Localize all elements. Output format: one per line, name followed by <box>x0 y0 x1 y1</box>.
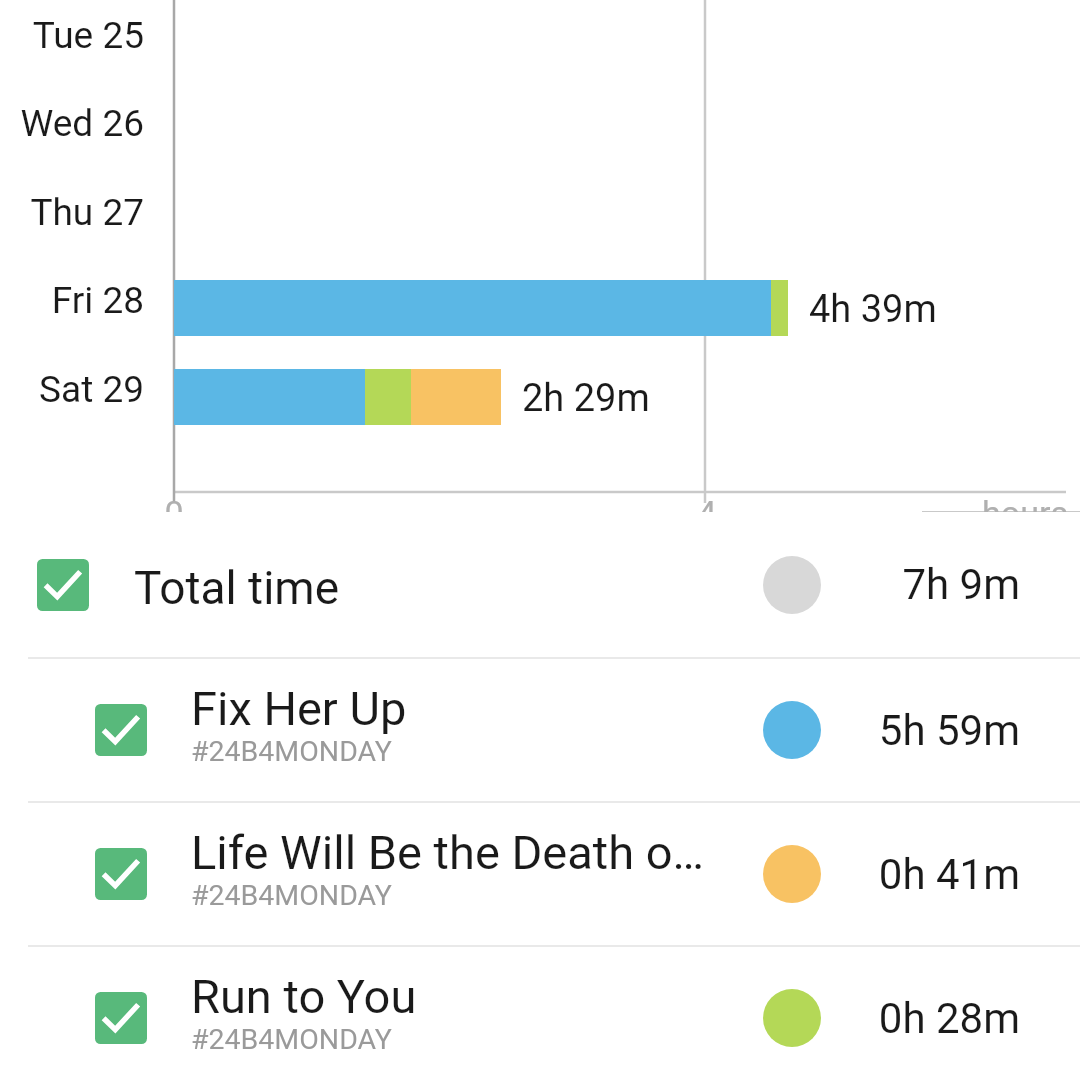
staticText: 4 <box>587 493 827 512</box>
button[interactable]: Toggle Run to You <box>95 992 147 1044</box>
staticText: 0 <box>54 493 294 512</box>
staticText: #24B4MONDAY <box>191 879 392 912</box>
button[interactable]: Toggle total time <box>0 512 1080 657</box>
staticText: 0h 41m <box>878 850 1020 899</box>
staticText: 4h 39m <box>809 287 937 332</box>
staticText: hours <box>905 493 1080 512</box>
staticText: Fix Her Up <box>191 681 407 736</box>
button[interactable]: Toggle total time <box>37 559 89 611</box>
staticText: #24B4MONDAY <box>191 735 392 768</box>
staticText: Run to You <box>191 969 417 1024</box>
button[interactable]: Toggle Life Will Be the Death o… <box>95 848 147 900</box>
staticText: Life Will Be the Death o… <box>191 825 704 880</box>
staticText: #24B4MONDAY <box>191 1023 392 1056</box>
staticText: Wed 26 <box>0 102 144 145</box>
staticText: 7h 9m <box>902 560 1020 609</box>
button[interactable]: Toggle Life Will Be the Death o… <box>0 803 1080 945</box>
staticText: 2h 29m <box>522 376 650 421</box>
staticText: 5h 59m <box>878 706 1020 755</box>
staticText: 0h 28m <box>878 994 1020 1043</box>
staticText: Sat 29 <box>0 368 144 411</box>
button[interactable]: Toggle Fix Her Up <box>95 704 147 756</box>
button[interactable]: Toggle Run to You <box>0 947 1080 1080</box>
staticText: Total time <box>134 561 340 615</box>
staticText: Tue 25 <box>0 14 144 57</box>
staticText: Fri 28 <box>0 279 144 322</box>
button[interactable]: Toggle Fix Her Up <box>0 659 1080 801</box>
staticText: Thu 27 <box>0 191 144 234</box>
